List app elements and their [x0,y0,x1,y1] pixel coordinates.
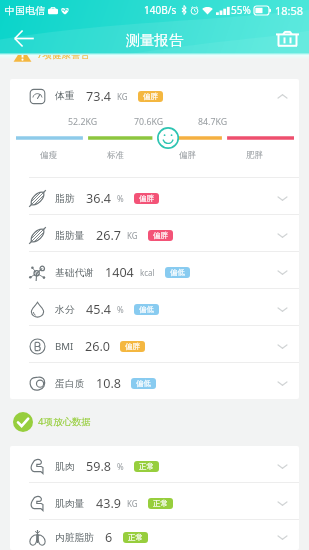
staticText: 偏胖 [125,342,140,351]
staticText: 43.9 [96,495,121,512]
staticText: 偏低 [136,379,151,388]
button[interactable]: 脂肪量 [10,215,299,251]
staticText: 测量报告 [126,31,184,49]
staticText: 中国电信 [5,4,45,17]
button[interactable]: 蛋白质 [10,363,299,399]
staticText: 7项健康警告 [37,48,90,61]
staticText: 正常 [139,462,154,471]
staticText: 脂肪量 [55,230,85,242]
button[interactable]: 肌肉 [10,446,299,482]
button[interactable]: 基础代谢 [10,252,299,288]
staticText: 标准 [107,150,124,161]
staticText: 偏胖 [179,150,196,161]
button[interactable]: 体重 [10,79,299,112]
staticText: 肌肉量 [55,498,85,510]
staticText: 84.7KG [198,116,228,128]
staticText: % [117,193,124,204]
staticText: 偏瘦 [40,150,57,161]
staticText: 基础代谢 [55,267,94,279]
staticText: 52.2KG [68,116,98,128]
staticText: 偏低 [139,305,154,314]
staticText: 18:58 [275,3,304,18]
staticText: % [117,461,124,472]
staticText: 26.0 [85,338,110,355]
staticText: % [117,304,124,315]
staticText: 4项放心数据 [38,415,91,428]
staticText: KG [127,230,138,241]
staticText: 73.4 [86,88,111,105]
staticText: 10.8 [96,375,121,392]
staticText: 体重 [55,90,75,102]
staticText: 45.4 [86,301,111,318]
staticText: 内脏脂肪 [55,532,94,544]
staticText: 55% [231,3,251,17]
staticText: KG [117,91,128,102]
staticText: 脂肪 [55,193,75,205]
staticText: 水分 [55,304,75,316]
staticText: 70.6KG [134,116,164,128]
staticText: 偏胖 [153,231,168,240]
staticText: 肥胖 [246,150,263,161]
button[interactable]: BMI [10,326,299,362]
staticText: 26.7 [96,227,121,244]
staticText: 36.4 [86,190,111,207]
staticText: 正常 [153,499,168,508]
staticText: 偏低 [170,268,185,277]
button[interactable]: 脂肪 [10,178,299,214]
staticText: 1404 [105,264,134,281]
button[interactable]: 水分 [10,289,299,325]
button[interactable]: Delete [269,20,305,55]
staticText: 6 [105,529,113,546]
staticText: 蛋白质 [55,378,85,390]
staticText: KG [127,498,138,509]
button[interactable]: Back [6,20,42,55]
staticText: 59.8 [86,458,111,475]
staticText: 偏胖 [143,92,158,101]
staticText: 140B/s [144,3,177,17]
button[interactable]: 肌肉量 [10,483,299,519]
staticText: 偏胖 [139,194,154,203]
staticText: 正常 [128,533,143,542]
staticText: BMI [55,340,74,353]
staticText: 肌肉 [55,461,75,473]
staticText: kcal [140,267,155,278]
button[interactable]: 内脏脂肪 [10,520,299,550]
